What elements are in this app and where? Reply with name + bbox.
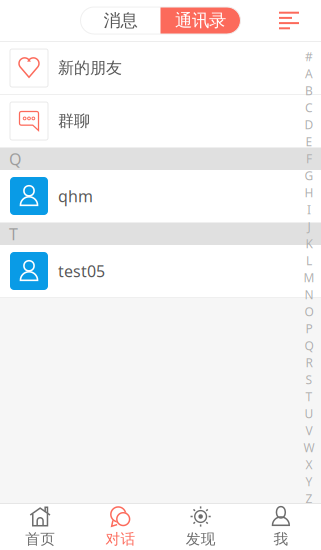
button[interactable]: 对话 xyxy=(80,504,160,550)
button[interactable]: 消息 xyxy=(80,7,160,34)
staticText: 新的朋友 xyxy=(58,58,122,78)
button[interactable]: Menu xyxy=(269,0,309,40)
staticText: R xyxy=(305,354,312,370)
staticText: A xyxy=(305,65,313,81)
staticText: K xyxy=(305,235,312,251)
staticText: Z xyxy=(305,490,312,506)
staticText: test05 xyxy=(58,260,105,282)
staticText: D xyxy=(304,116,313,132)
staticText: 我 xyxy=(273,530,288,548)
staticText: T xyxy=(305,388,312,404)
staticText: H xyxy=(304,184,313,200)
staticText: 首页 xyxy=(25,530,55,548)
button[interactable]: 发现 xyxy=(160,504,241,550)
staticText: 通讯录 xyxy=(175,10,226,31)
staticText: F xyxy=(306,150,312,166)
staticText: Q xyxy=(9,148,21,170)
staticText: L xyxy=(306,252,312,268)
staticText: W xyxy=(303,439,314,455)
button[interactable]: 我 xyxy=(241,504,321,550)
staticText: G xyxy=(304,167,313,183)
button[interactable]: 通讯录 xyxy=(160,7,240,34)
button[interactable]: qhm xyxy=(0,170,321,223)
staticText: N xyxy=(304,286,313,302)
staticText: U xyxy=(304,405,313,421)
button[interactable]: 新的朋友 xyxy=(0,42,321,95)
staticText: P xyxy=(305,320,312,336)
staticText: Y xyxy=(305,473,312,489)
staticText: 消息 xyxy=(103,10,137,31)
button[interactable]: test05 xyxy=(0,245,321,298)
staticText: 对话 xyxy=(105,530,135,548)
staticText: Q xyxy=(304,337,313,353)
staticText: J xyxy=(307,218,310,234)
staticText: T xyxy=(9,223,18,245)
staticText: O xyxy=(304,303,313,319)
button[interactable]: 首页 xyxy=(0,504,80,550)
staticText: E xyxy=(305,133,312,149)
staticText: S xyxy=(305,371,312,387)
staticText: B xyxy=(305,82,313,98)
staticText: qhm xyxy=(58,185,93,207)
staticText: # xyxy=(305,48,313,64)
staticText: M xyxy=(303,269,314,285)
staticText: 群聊 xyxy=(58,111,90,131)
staticText: 发现 xyxy=(186,530,216,548)
staticText: X xyxy=(305,456,312,472)
staticText: C xyxy=(305,99,313,115)
staticText: V xyxy=(305,422,312,438)
staticText: I xyxy=(307,201,311,217)
button[interactable]: 群聊 xyxy=(0,95,321,148)
